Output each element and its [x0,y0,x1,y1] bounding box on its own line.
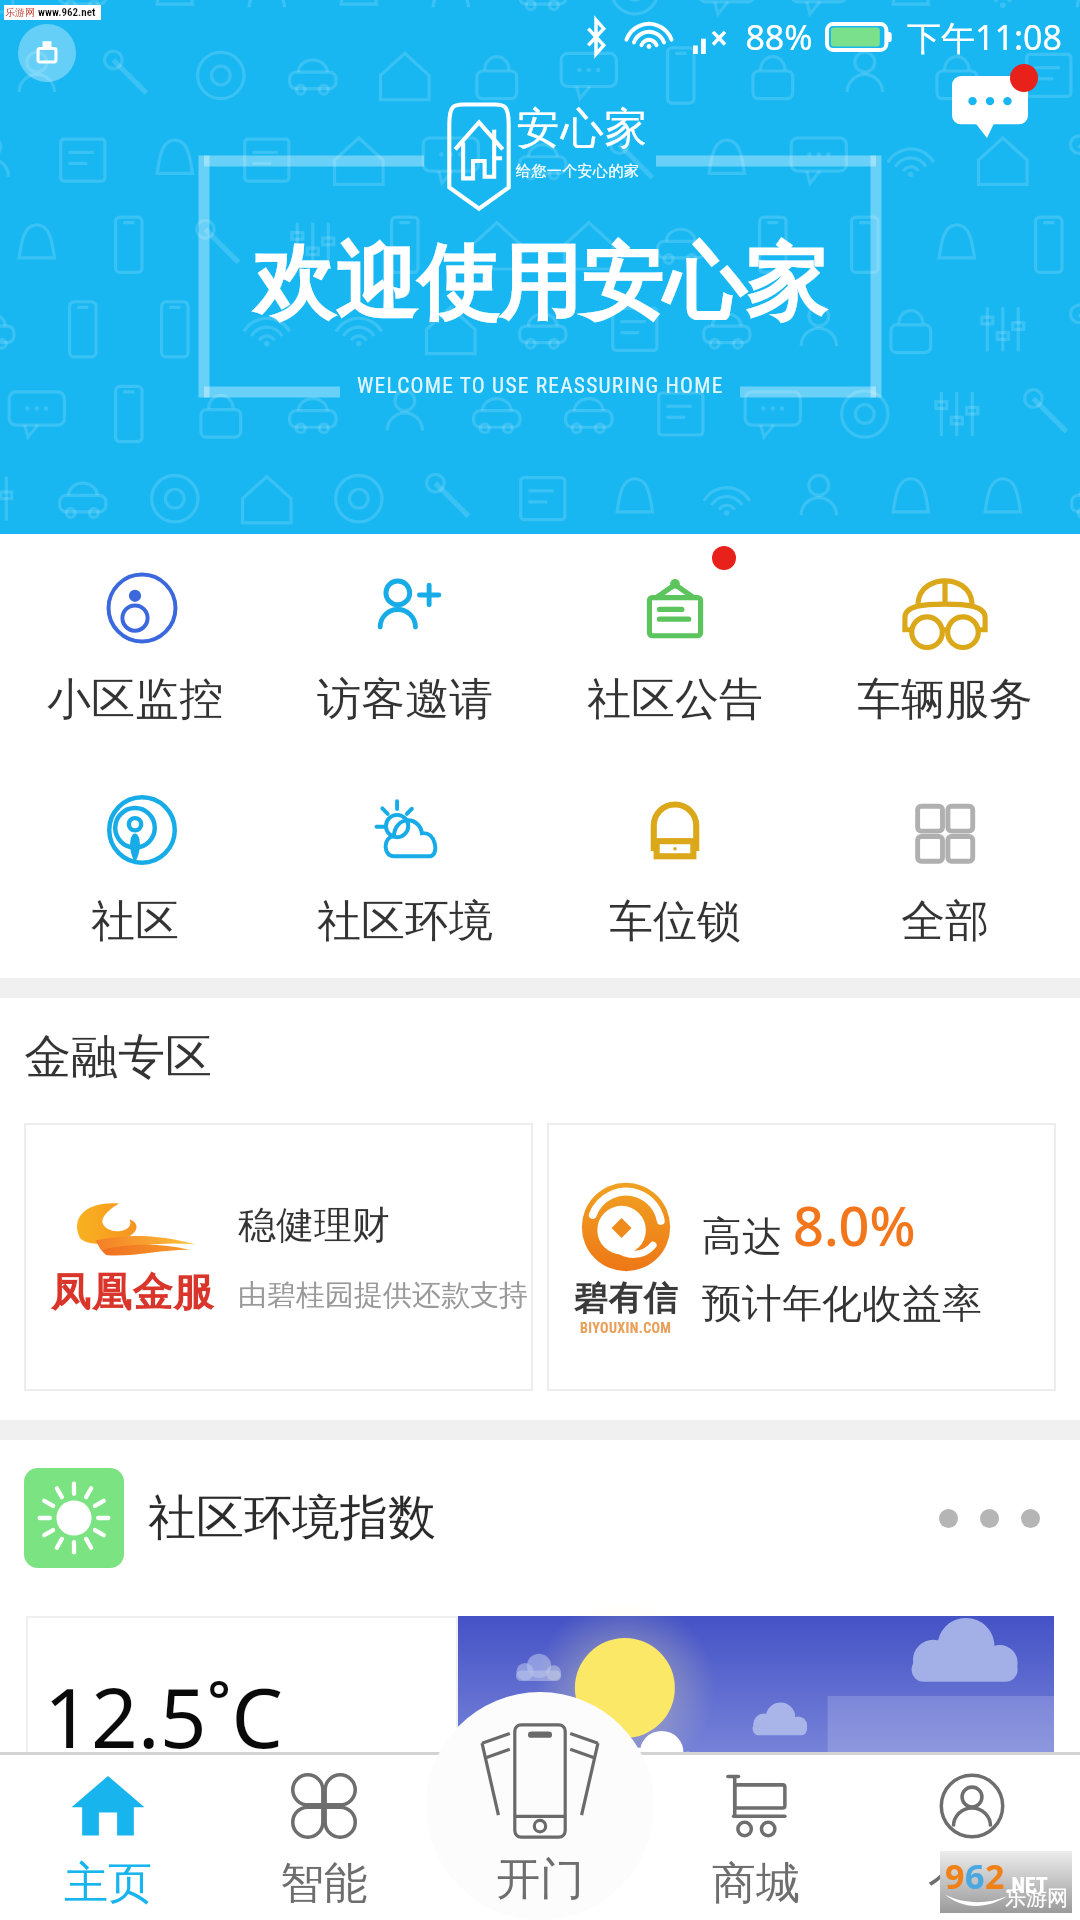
button[interactable]: More options [929,1499,1050,1538]
button[interactable]: 车位锁 [540,756,810,978]
button[interactable]: 商城 [648,1752,864,1920]
staticText: 主页 [64,1856,152,1911]
button[interactable]: 社区公告 [540,534,810,756]
staticText: 社区环境 [317,894,493,949]
staticText: 乐游网 [5,6,35,19]
button[interactable]: 主页 [0,1752,216,1920]
staticText: 小区监控 [47,672,223,727]
staticText: 个人 [928,1856,1016,1911]
button[interactable]: 社区 [0,756,270,978]
staticText: 高达 [702,1207,793,1262]
staticText: 88% [745,14,813,60]
button[interactable]: 社区环境 [270,756,540,978]
button[interactable]: 碧有信 [547,1123,1056,1391]
button[interactable]: 开门 [426,1692,654,1920]
staticText: 安心家 [516,102,648,156]
button[interactable]: 个人 [864,1752,1080,1920]
staticText: 8.0% [793,1188,916,1262]
staticText: 给您一个安心的家 [516,162,640,181]
staticText: 商城 [712,1856,800,1911]
button[interactable]: 小区监控 [0,534,270,756]
staticText: 社区公告 [587,672,763,727]
staticText: 预计年化收益率 [702,1278,982,1328]
staticText: 全部 [901,894,989,949]
staticText: 金融专区 [24,1028,212,1087]
staticText: 12.5˚C [44,1660,284,1772]
staticText: 碧有信 [573,1277,678,1320]
button[interactable]: 车辆服务 [810,534,1080,756]
staticText: 智能 [280,1856,368,1911]
staticText: WELCOME TO USE REASSURING HOME [357,373,724,398]
staticText: 社区环境指数 [148,1488,436,1548]
staticText: .NET [1005,1873,1048,1899]
staticText: 欢迎使用安心家 [253,232,827,335]
button[interactable]: 访客邀请 [270,534,540,756]
staticText: 乐游网 [1005,1885,1068,1911]
staticText: 6 [965,1853,985,1899]
button[interactable]: 凤凰金服 [24,1123,533,1391]
staticText: 社区 [91,894,179,949]
staticText: 稳健理财 [238,1201,390,1249]
staticText: 由碧桂园提供还款支持 [238,1277,533,1314]
staticText: 开门 [496,1852,584,1907]
staticText: www.962.net [38,6,96,19]
button[interactable]: Messages [952,76,1028,138]
staticText: 9 [945,1853,965,1899]
staticText: 访客邀请 [317,672,493,727]
staticText: 车位锁 [609,894,741,949]
staticText: 下午11:08 [907,14,1062,60]
button[interactable]: 智能 [216,1752,432,1920]
button[interactable]: 全部 [810,756,1080,978]
staticText: BIYOUXIN.COM [580,1320,672,1336]
staticText: 凤凰金服 [50,1267,214,1317]
staticText: 2 [985,1853,1005,1899]
staticText: 车辆服务 [857,672,1033,727]
